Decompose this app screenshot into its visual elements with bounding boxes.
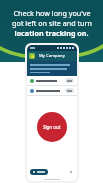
button[interactable]: Action xyxy=(27,76,77,85)
other: Company logo xyxy=(29,53,35,59)
staticText: Sign out xyxy=(43,124,61,130)
staticText: location tracking on. xyxy=(14,28,89,38)
button[interactable] xyxy=(30,169,48,175)
staticText: My Company xyxy=(39,53,65,59)
staticText: Check how long you've xyxy=(13,8,91,18)
staticText: got left on site and turn xyxy=(12,18,92,28)
button[interactable]: Action xyxy=(27,86,77,95)
button[interactable]: Company logo xyxy=(27,51,77,61)
button[interactable]: Action xyxy=(65,78,74,83)
button[interactable]: Action xyxy=(65,88,74,93)
button[interactable]: Sign out xyxy=(37,112,67,142)
